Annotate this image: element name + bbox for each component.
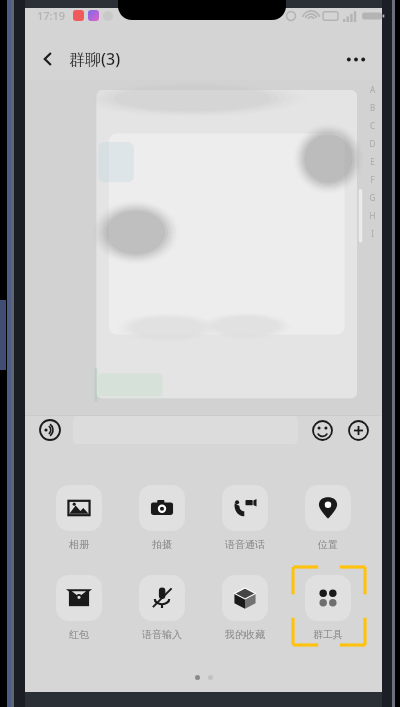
button[interactable]: Back xyxy=(31,42,65,76)
staticText: I xyxy=(367,228,378,246)
staticText: 群工具 xyxy=(313,628,343,641)
button[interactable]: 位置 xyxy=(289,477,367,557)
button[interactable]: 语音输入 xyxy=(123,567,201,647)
button[interactable]: Emoji xyxy=(308,416,336,444)
button[interactable]: 拍摄 xyxy=(123,477,201,557)
button[interactable]: 群工具 xyxy=(289,567,367,647)
staticText: C xyxy=(367,120,378,138)
staticText: A xyxy=(367,84,378,102)
staticText: 语音通话 xyxy=(225,538,265,551)
button[interactable]: More attachments xyxy=(344,416,372,444)
staticText: F xyxy=(367,174,378,192)
button[interactable]: 我的收藏 xyxy=(206,567,284,647)
staticText: 17:19 xyxy=(37,8,66,23)
staticText: 群聊(3) xyxy=(69,48,121,70)
staticText: H xyxy=(367,210,378,228)
staticText: 红包 xyxy=(69,628,89,641)
button[interactable]: 相册 xyxy=(40,477,118,557)
staticText: 语音输入 xyxy=(142,628,182,641)
staticText: D xyxy=(367,138,378,156)
staticText: B xyxy=(367,102,378,120)
staticText: E xyxy=(367,156,378,174)
staticText: 相册 xyxy=(69,538,89,551)
button[interactable]: 红包 xyxy=(40,567,118,647)
staticText: 位置 xyxy=(318,538,338,551)
button[interactable]: 语音通话 xyxy=(206,477,284,557)
button[interactable]: More options xyxy=(338,41,374,77)
button[interactable]: Voice input xyxy=(35,415,65,445)
staticText: 拍摄 xyxy=(152,538,172,551)
staticText: 我的收藏 xyxy=(225,628,265,641)
staticText: G xyxy=(367,192,378,210)
